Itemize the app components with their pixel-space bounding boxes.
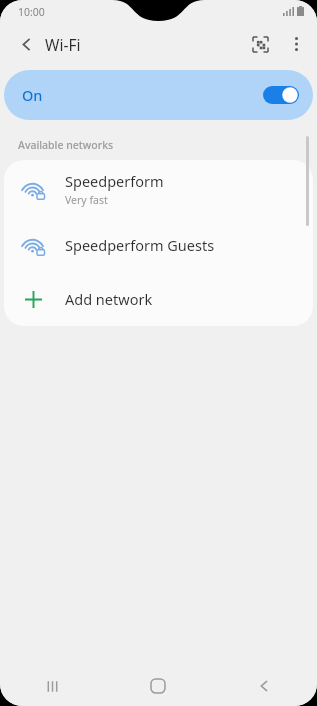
staticText: Wi-Fi (45, 34, 81, 55)
button[interactable]: Add network (4, 272, 313, 326)
button[interactable]: Speedperform Guests (4, 218, 313, 272)
staticText: On (22, 85, 43, 105)
button[interactable]: Back (211, 666, 317, 706)
staticText: Speedperform Guests (65, 235, 215, 255)
button[interactable]: On (4, 70, 313, 120)
button[interactable]: Navigate up (9, 27, 43, 61)
button[interactable]: Home (105, 666, 211, 706)
staticText: Add network (65, 289, 153, 309)
button[interactable]: Scan QR code (242, 26, 278, 62)
staticText: 10:00 (18, 5, 45, 19)
staticText: Speedperform (65, 171, 164, 191)
staticText: Very fast (65, 193, 108, 207)
staticText: Available networks (18, 138, 114, 152)
button[interactable]: Recent apps (0, 666, 105, 706)
button[interactable]: More options (278, 26, 314, 62)
button[interactable]: Speedperform (4, 160, 313, 218)
